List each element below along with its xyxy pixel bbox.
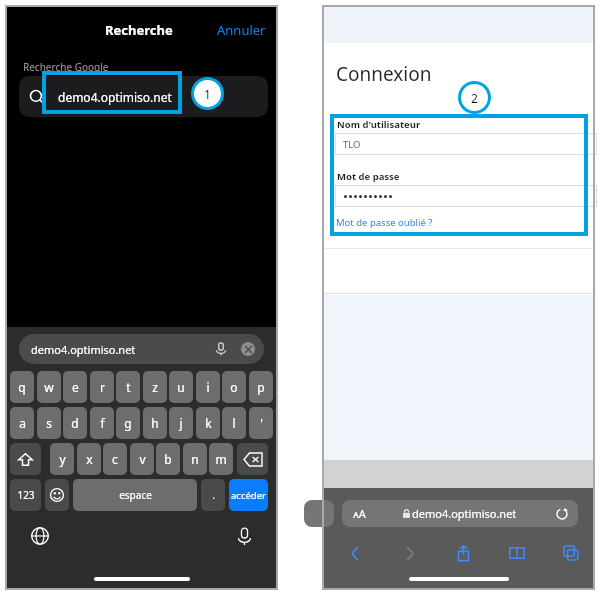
- staticText: i: [206, 379, 210, 395]
- staticText: demo4.optimiso.net: [412, 506, 517, 521]
- button[interactable]: ': [249, 407, 273, 439]
- button[interactable]: espace: [73, 479, 197, 511]
- button[interactable]: y: [50, 443, 74, 475]
- button[interactable]: m: [209, 443, 233, 475]
- button[interactable]: p: [249, 371, 273, 403]
- staticText: a: [19, 415, 26, 431]
- staticText: Connexion: [336, 61, 432, 87]
- staticText: Recherche Google: [23, 60, 109, 74]
- staticText: h: [151, 415, 159, 431]
- staticText: 123: [17, 488, 35, 502]
- staticText: ': [260, 415, 263, 431]
- button[interactable]: k: [196, 407, 220, 439]
- staticText: Nom d'utilisateur: [337, 118, 421, 131]
- staticText: w: [44, 379, 54, 395]
- button[interactable]: 123: [10, 479, 41, 511]
- staticText: q: [18, 379, 26, 395]
- staticText: r: [100, 379, 105, 395]
- button[interactable]: demo4.optimiso.net: [19, 334, 264, 364]
- staticText: o: [230, 379, 238, 395]
- button[interactable]: q: [10, 371, 34, 403]
- button[interactable]: ᴀA: [342, 500, 578, 527]
- button[interactable]: w: [37, 371, 61, 403]
- staticText: u: [177, 379, 185, 395]
- button[interactable]: Annuler: [209, 21, 274, 39]
- button[interactable]: l: [222, 407, 246, 439]
- staticText: g: [124, 415, 132, 431]
- staticText: x: [86, 451, 93, 467]
- button[interactable]: t: [116, 371, 140, 403]
- staticText: n: [191, 451, 199, 467]
- button[interactable]: u: [169, 371, 193, 403]
- button[interactable]: v: [130, 443, 154, 475]
- staticText: Recherche: [105, 21, 173, 39]
- button[interactable]: a: [10, 407, 34, 439]
- staticText: e: [72, 379, 79, 395]
- button[interactable]: h: [143, 407, 167, 439]
- staticText: k: [205, 415, 212, 431]
- button[interactable]: demo4.optimiso.net: [19, 76, 268, 117]
- staticText: Mot de passe: [337, 170, 400, 183]
- staticText: espace: [119, 488, 152, 502]
- staticText: d: [71, 415, 79, 431]
- button[interactable]: d: [63, 407, 87, 439]
- staticText: accéder: [231, 489, 266, 502]
- button[interactable]: e: [63, 371, 87, 403]
- staticText: j: [179, 415, 183, 431]
- button[interactable]: Clear: [241, 342, 255, 356]
- staticText: demo4.optimiso.net: [58, 89, 172, 105]
- button[interactable]: f: [90, 407, 114, 439]
- staticText: p: [257, 379, 265, 395]
- staticText: y: [59, 451, 66, 467]
- staticText: c: [112, 451, 118, 467]
- button[interactable]: .: [201, 479, 225, 511]
- button[interactable]: Bookmarks: [504, 540, 530, 566]
- button[interactable]: Forward: [396, 540, 422, 566]
- staticText: v: [139, 451, 146, 467]
- staticText: m: [215, 451, 227, 467]
- button[interactable]: o: [222, 371, 246, 403]
- button[interactable]: TLO: [335, 133, 597, 155]
- button[interactable]: Emoji: [45, 479, 69, 511]
- button[interactable]: Shift: [10, 443, 41, 475]
- staticText: t: [126, 379, 131, 395]
- staticText: s: [46, 415, 52, 431]
- button[interactable]: r: [90, 371, 114, 403]
- staticText: b: [164, 451, 172, 467]
- button[interactable]: Share: [450, 540, 476, 566]
- staticText: ᴀA: [353, 506, 366, 521]
- button[interactable]: Reload: [554, 506, 570, 522]
- button[interactable]: Back: [342, 540, 368, 566]
- staticText: 2: [471, 90, 478, 106]
- button[interactable]: Backspace: [237, 443, 268, 475]
- button[interactable]: j: [169, 407, 193, 439]
- staticText: Annuler: [217, 21, 266, 39]
- staticText: Mot de passe oublié ?: [336, 216, 433, 229]
- staticText: demo4.optimiso.net: [31, 342, 136, 357]
- button[interactable]: n: [183, 443, 207, 475]
- button[interactable]: [335, 185, 597, 207]
- button[interactable]: Change keyboard: [27, 523, 53, 549]
- staticText: .: [212, 488, 215, 502]
- staticText: z: [152, 379, 158, 395]
- staticText: l: [232, 415, 236, 431]
- staticText: 1: [204, 86, 211, 102]
- button[interactable]: Mot de passe oublié ?: [336, 216, 433, 229]
- button[interactable]: g: [116, 407, 140, 439]
- staticText: f: [100, 415, 105, 431]
- button[interactable]: accéder: [229, 479, 268, 511]
- staticText: TLO: [343, 138, 361, 151]
- button[interactable]: i: [196, 371, 220, 403]
- button[interactable]: x: [77, 443, 101, 475]
- button[interactable]: Tabs: [558, 540, 584, 566]
- button[interactable]: Dictate: [231, 523, 257, 549]
- button[interactable]: c: [103, 443, 127, 475]
- button[interactable]: s: [37, 407, 61, 439]
- button[interactable]: z: [143, 371, 167, 403]
- button[interactable]: b: [156, 443, 180, 475]
